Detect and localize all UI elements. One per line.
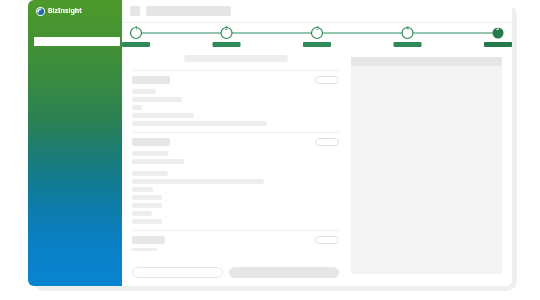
staticText: 4 [406, 25, 409, 32]
button[interactable]: Back [132, 267, 223, 278]
button[interactable]: BizInsight home [36, 6, 83, 16]
staticText: BizInsight [48, 6, 83, 16]
button[interactable]: Option [315, 76, 339, 84]
staticText: 1 [135, 25, 138, 32]
button[interactable]: Option [315, 138, 339, 146]
staticText: 2 [225, 25, 228, 32]
button[interactable]: Continue [229, 267, 339, 278]
button[interactable]: Step 3 [311, 23, 324, 51]
button[interactable]: Option [315, 236, 339, 244]
staticText: 5 [496, 25, 499, 32]
button[interactable]: Step 4 [401, 23, 414, 51]
button[interactable]: Menu [130, 6, 140, 16]
button[interactable]: Step 5 [491, 23, 504, 51]
button[interactable]: Step 1 [130, 23, 143, 51]
button[interactable]: Step 2 [220, 23, 233, 51]
staticText: 3 [316, 25, 319, 32]
